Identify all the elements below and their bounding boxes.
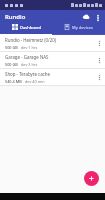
button[interactable]: Rundio - Heimnetz (0/20) — [0, 35, 105, 51]
staticText: Rundio — [5, 13, 26, 21]
button[interactable]: Shop - Terabyte cache — [0, 69, 105, 85]
button[interactable]: Dashboard — [0, 24, 52, 30]
staticText: 540.4 MB — [5, 79, 22, 84]
staticText: My devices — [72, 25, 93, 30]
button[interactable]: Cloud sync — [80, 11, 92, 23]
button[interactable]: Add — [84, 171, 99, 186]
button[interactable]: Garage - Garage NAS — [0, 52, 105, 68]
staticText: dev 3 hrs — [21, 62, 38, 67]
button[interactable]: My devices — [52, 24, 105, 30]
staticText: Shop - Terabyte cache — [5, 71, 50, 77]
button[interactable]: Item options — [95, 69, 104, 85]
staticText: 500 GB — [5, 62, 18, 67]
staticText: dev 40 min — [25, 79, 45, 84]
staticText: 500 GB — [5, 45, 18, 50]
button[interactable]: Item options — [95, 52, 104, 68]
staticText: Rundio - Heimnetz (0/20) — [5, 37, 57, 43]
button[interactable]: Item options — [95, 35, 104, 51]
staticText: dev 1 hrs — [21, 45, 38, 50]
staticText: Garage - Garage NAS — [5, 54, 49, 60]
staticText: Dashboard — [20, 25, 41, 30]
button[interactable]: More options — [92, 12, 103, 23]
